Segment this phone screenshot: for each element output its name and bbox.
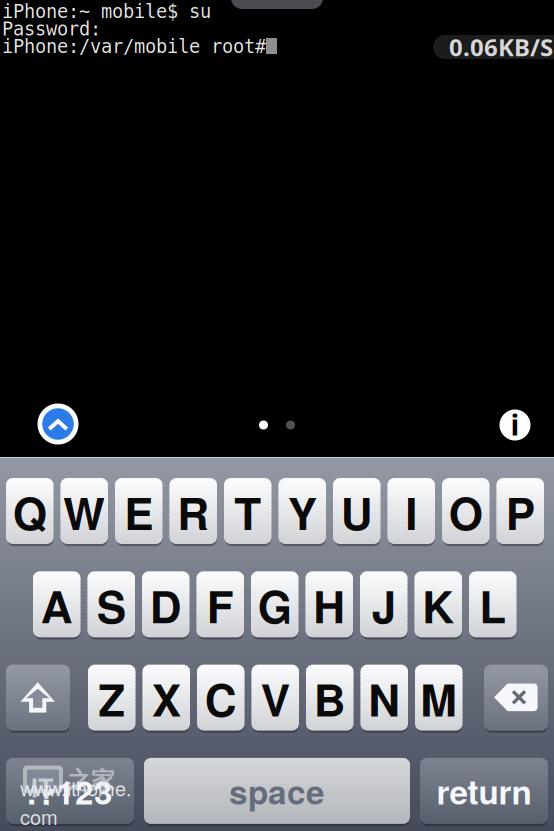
staticText: Password: [2,18,101,40]
staticText: D [150,574,182,637]
staticText: N [368,667,400,730]
button[interactable]: O [442,478,489,544]
button[interactable]: .?123 [6,758,134,824]
staticText: 之家 [67,766,115,795]
button[interactable]: S [87,571,135,637]
button[interactable]: return [420,758,548,824]
button[interactable]: C [197,665,244,731]
staticText: IT [31,769,53,805]
button[interactable]: R [169,478,217,544]
staticText: K [422,574,454,637]
staticText: E [124,480,153,543]
staticText: C [205,667,237,730]
staticText: L [479,574,506,637]
button[interactable] [6,665,70,731]
staticText: R [177,480,209,543]
button[interactable]: A [33,571,80,637]
button[interactable]: F [196,571,244,637]
staticText: .?123 [27,767,113,815]
staticText: W [63,480,105,543]
staticText: V [261,667,290,730]
button[interactable]: Info [490,400,540,450]
staticText: return [436,767,531,815]
button[interactable]: U [333,478,380,544]
staticText: iPhone:/var/mobile root# [2,36,266,57]
staticText: i [510,404,519,443]
staticText: U [341,480,373,543]
staticText: S [97,574,126,637]
staticText: Y [288,480,317,543]
staticText: P [506,480,535,543]
button[interactable]: L [469,571,516,637]
staticText: J [372,574,396,637]
staticText: G [258,574,292,637]
staticText: I [405,480,417,543]
staticText: F [207,574,234,637]
button[interactable]: W [60,478,108,544]
button[interactable]: N [360,665,408,731]
button[interactable]: Show keyboard toolbar [33,399,83,449]
button[interactable]: Y [278,478,326,544]
button[interactable]: space [144,758,410,824]
staticText: A [41,574,73,637]
button[interactable]: J [360,571,407,637]
staticText: 0.06KB/S [449,31,553,63]
button[interactable]: T [224,478,271,544]
staticText: H [313,574,345,637]
button[interactable]: Q [6,478,53,544]
button[interactable]: E [115,478,162,544]
button[interactable] [484,665,548,731]
staticText: B [314,667,346,730]
button[interactable]: H [305,571,353,637]
button[interactable]: X [142,665,190,731]
button[interactable]: I [387,478,435,544]
button[interactable]: D [142,571,189,637]
button[interactable]: M [415,665,462,731]
staticText: T [234,480,261,543]
staticText: Z [98,667,125,730]
staticText: M [420,667,457,730]
button[interactable]: K [414,571,462,637]
staticText: O [449,480,483,543]
button[interactable]: G [251,571,298,637]
button[interactable]: Z [88,665,135,731]
staticText: X [152,667,181,730]
staticText: iPhone:~ mobile$ su [2,1,211,22]
button[interactable]: V [251,665,299,731]
button[interactable]: B [306,665,353,731]
staticText: Q [13,480,47,543]
staticText: space [229,767,325,815]
staticText: www.ithome.com [20,773,132,831]
button[interactable]: P [496,478,544,544]
